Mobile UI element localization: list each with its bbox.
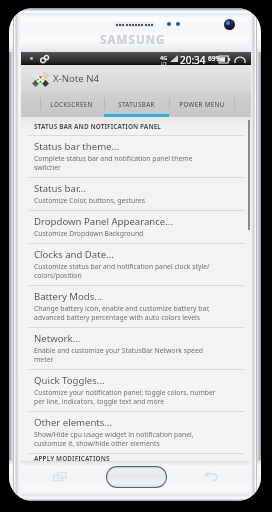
staticText: 20:34 [180, 53, 206, 66]
staticText: STATUSBAR [118, 100, 155, 108]
button[interactable]: APPLY MODIFICATIONS [34, 454, 251, 461]
staticText: Quick Toggles... [34, 374, 105, 387]
staticText: Change battery icon, enable and customiz… [34, 304, 216, 322]
staticText: Enable and customize your StatusBar Netw… [34, 346, 216, 364]
button[interactable]: POWER MENU [169, 91, 234, 117]
staticText: Network... [34, 332, 81, 345]
button[interactable]: Status bar theme... [21, 136, 251, 177]
button[interactable]: Quick Toggles... [21, 370, 251, 411]
button[interactable]: Dropdown Panel Appearance... [21, 211, 251, 243]
button[interactable]: Back [203, 469, 219, 483]
button[interactable]: LOCKSCREEN [39, 91, 104, 117]
staticText: Customize status bar and notification pa… [34, 262, 216, 280]
button[interactable]: Recent apps [53, 471, 67, 482]
button[interactable]: Battery Mods... [21, 286, 251, 327]
staticText: Battery Mods... [34, 290, 103, 303]
button[interactable]: Home [106, 466, 167, 488]
staticText: Customize Color, buttons, gestures [34, 196, 145, 205]
staticText: 69% [208, 54, 221, 63]
button[interactable]: Status bar... [21, 178, 251, 210]
button[interactable]: Network... [21, 328, 251, 369]
staticText: LTE [161, 61, 167, 66]
staticText: SAMSUNG [100, 32, 166, 48]
staticText: 4G [160, 54, 168, 61]
staticText: Clocks and Date... [34, 248, 114, 261]
button[interactable]: X-Note N4 [21, 65, 251, 91]
button[interactable]: Other elements... [21, 412, 251, 453]
staticText: Show/Hide cpu usage widget in notificati… [34, 430, 216, 448]
staticText: Dropdown Panel Appearance... [34, 215, 173, 228]
staticText: Customize Dropdown Background [34, 229, 144, 238]
staticText: Status bar... [34, 182, 87, 195]
staticText: STATUS BAR AND NOTIFICATION PANEL [34, 122, 162, 131]
staticText: Other elements... [34, 416, 113, 429]
staticText: APPLY MODIFICATIONS [34, 454, 110, 461]
staticText: Status bar theme... [34, 140, 120, 153]
staticText: Complete status bar and notification pan… [34, 154, 216, 172]
staticText: Customize your notification panel: toggl… [34, 388, 216, 406]
button[interactable]: Clocks and Date... [21, 244, 251, 285]
staticText: X-Note N4 [53, 72, 99, 85]
staticText: POWER MENU [179, 100, 225, 108]
button[interactable]: STATUSBAR [104, 91, 169, 117]
staticText: LOCKSCREEN [50, 100, 93, 108]
